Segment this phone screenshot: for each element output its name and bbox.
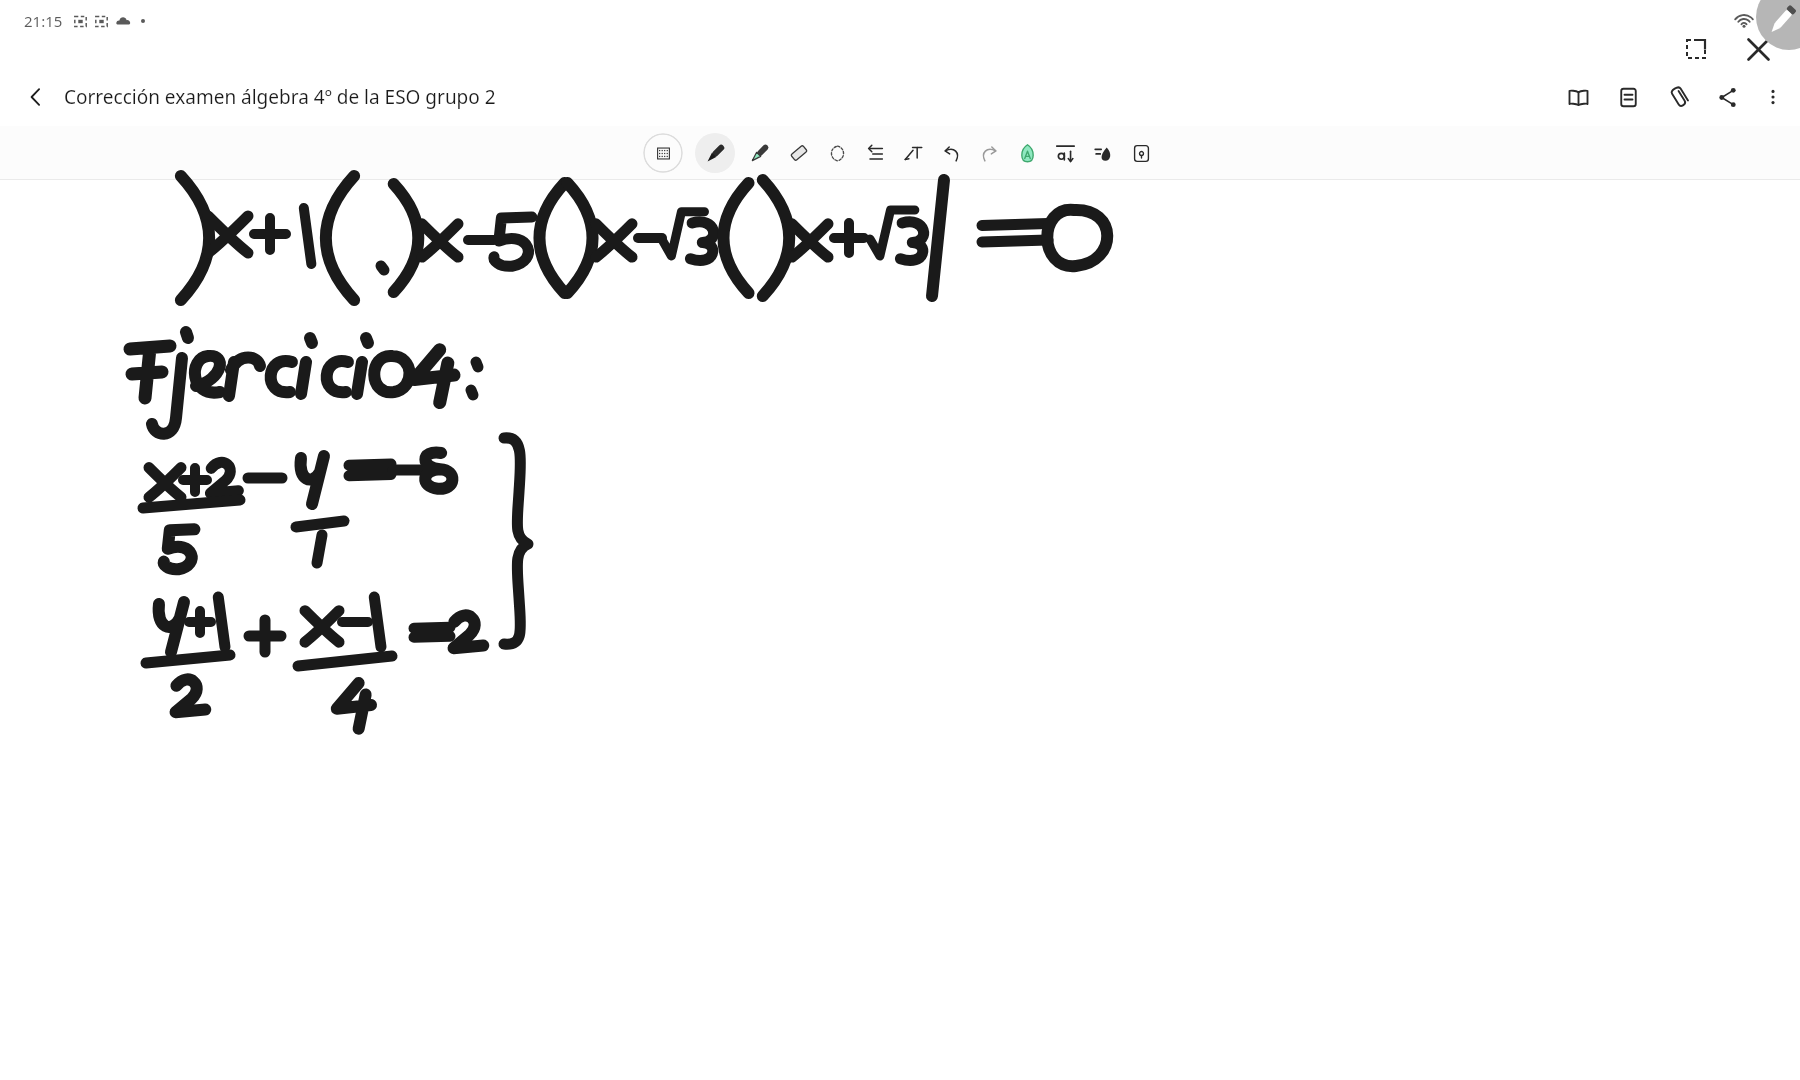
button[interactable]: Redo xyxy=(973,137,1006,170)
button[interactable]: More options xyxy=(1758,82,1788,112)
button[interactable]: Share xyxy=(1711,81,1744,114)
button[interactable]: Read mode xyxy=(1561,80,1596,115)
button[interactable]: Lock canvas xyxy=(1125,137,1158,170)
button[interactable]: Text style xyxy=(1049,137,1082,170)
button[interactable]: Highlighter xyxy=(743,136,777,170)
button[interactable]: Resize xyxy=(1680,33,1712,65)
button[interactable]: Attach file xyxy=(1661,80,1696,115)
button[interactable]: Close xyxy=(1736,27,1780,71)
button[interactable]: Eraser xyxy=(782,136,816,170)
button[interactable]: Selection xyxy=(821,137,854,170)
button[interactable]: Keyboard xyxy=(643,133,683,173)
button[interactable]: Insert text xyxy=(897,137,930,170)
button[interactable]: Pen xyxy=(695,133,735,173)
button[interactable]: Ink settings xyxy=(1087,137,1120,170)
button[interactable]: Undo xyxy=(935,137,968,170)
button[interactable]: Back xyxy=(18,79,54,115)
button[interactable]: Align xyxy=(859,137,892,170)
button[interactable]: Notes xyxy=(1611,80,1646,115)
staticText: Corrección examen álgebra 4º de la ESO g… xyxy=(64,84,1561,110)
button[interactable]: Pen settings xyxy=(1756,0,1800,50)
button[interactable]: Convert handwriting to text xyxy=(1011,137,1044,170)
staticText: 21:15 xyxy=(24,11,63,31)
